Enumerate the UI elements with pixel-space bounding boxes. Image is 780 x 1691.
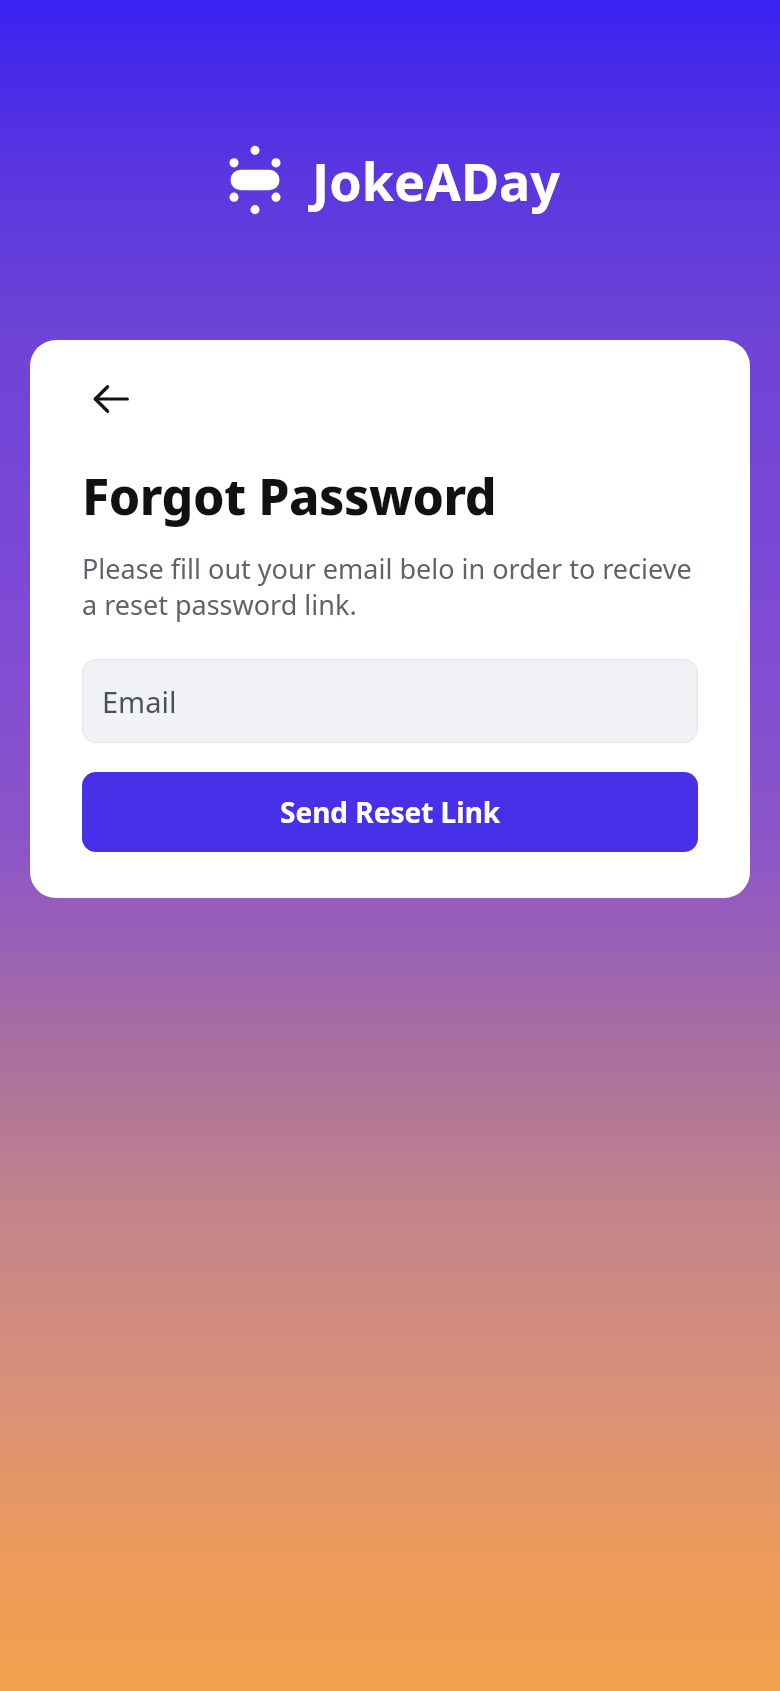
button[interactable]: Send Reset Link [82, 772, 698, 852]
staticText: Send Reset Link [280, 793, 501, 831]
staticText: Forgot Password [82, 462, 497, 530]
button[interactable]: Email [82, 659, 698, 743]
staticText: JokeADay [312, 145, 560, 216]
button[interactable]: Back [82, 370, 140, 428]
staticText: Please fill out your email belo in order… [82, 550, 698, 623]
staticText: Email [102, 682, 177, 721]
